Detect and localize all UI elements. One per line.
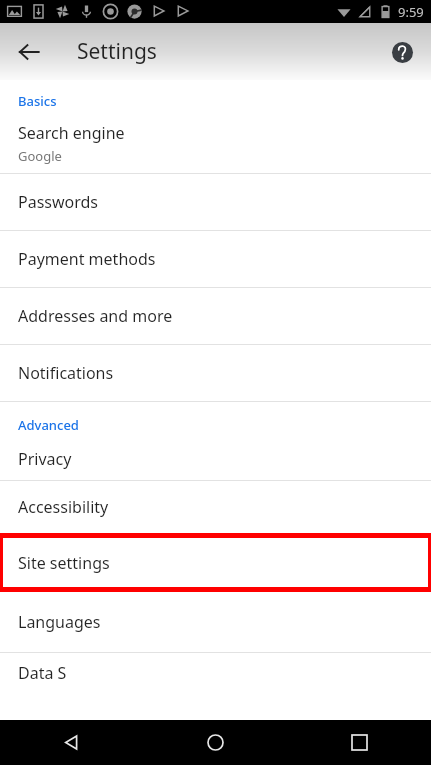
button[interactable]: Notifications (0, 345, 431, 401)
button[interactable]: Accessibility (0, 481, 431, 533)
staticText: Google (18, 147, 62, 165)
staticText: Passwords (18, 191, 99, 213)
staticText: Privacy (18, 448, 72, 470)
staticText: 9:59 (398, 3, 424, 21)
staticText: Settings (77, 37, 157, 66)
button[interactable]: Back (0, 720, 143, 765)
button[interactable]: Payment methods (0, 231, 431, 287)
button[interactable]: Languages (0, 592, 431, 652)
staticText: Notifications (18, 362, 114, 384)
staticText: Advanced (18, 416, 79, 434)
button[interactable]: Help and feedback (382, 32, 422, 72)
staticText: Accessibility (18, 496, 109, 518)
button[interactable]: Passwords (0, 174, 431, 230)
button[interactable]: Privacy (0, 438, 431, 480)
staticText: Languages (18, 611, 101, 633)
button[interactable]: Navigate up (9, 32, 49, 72)
button[interactable]: Data S (0, 653, 431, 693)
button[interactable]: Search engine (0, 114, 431, 173)
staticText: Data S (18, 662, 67, 684)
staticText: Payment methods (18, 248, 156, 270)
button[interactable]: Recent apps (287, 720, 431, 765)
staticText: Basics (18, 92, 57, 110)
staticText: Search engine (18, 122, 125, 144)
staticText: Addresses and more (18, 305, 173, 327)
button[interactable]: Site settings (3, 538, 428, 587)
button[interactable]: Addresses and more (0, 288, 431, 344)
button[interactable]: Home (143, 720, 287, 765)
staticText: Site settings (18, 552, 110, 574)
